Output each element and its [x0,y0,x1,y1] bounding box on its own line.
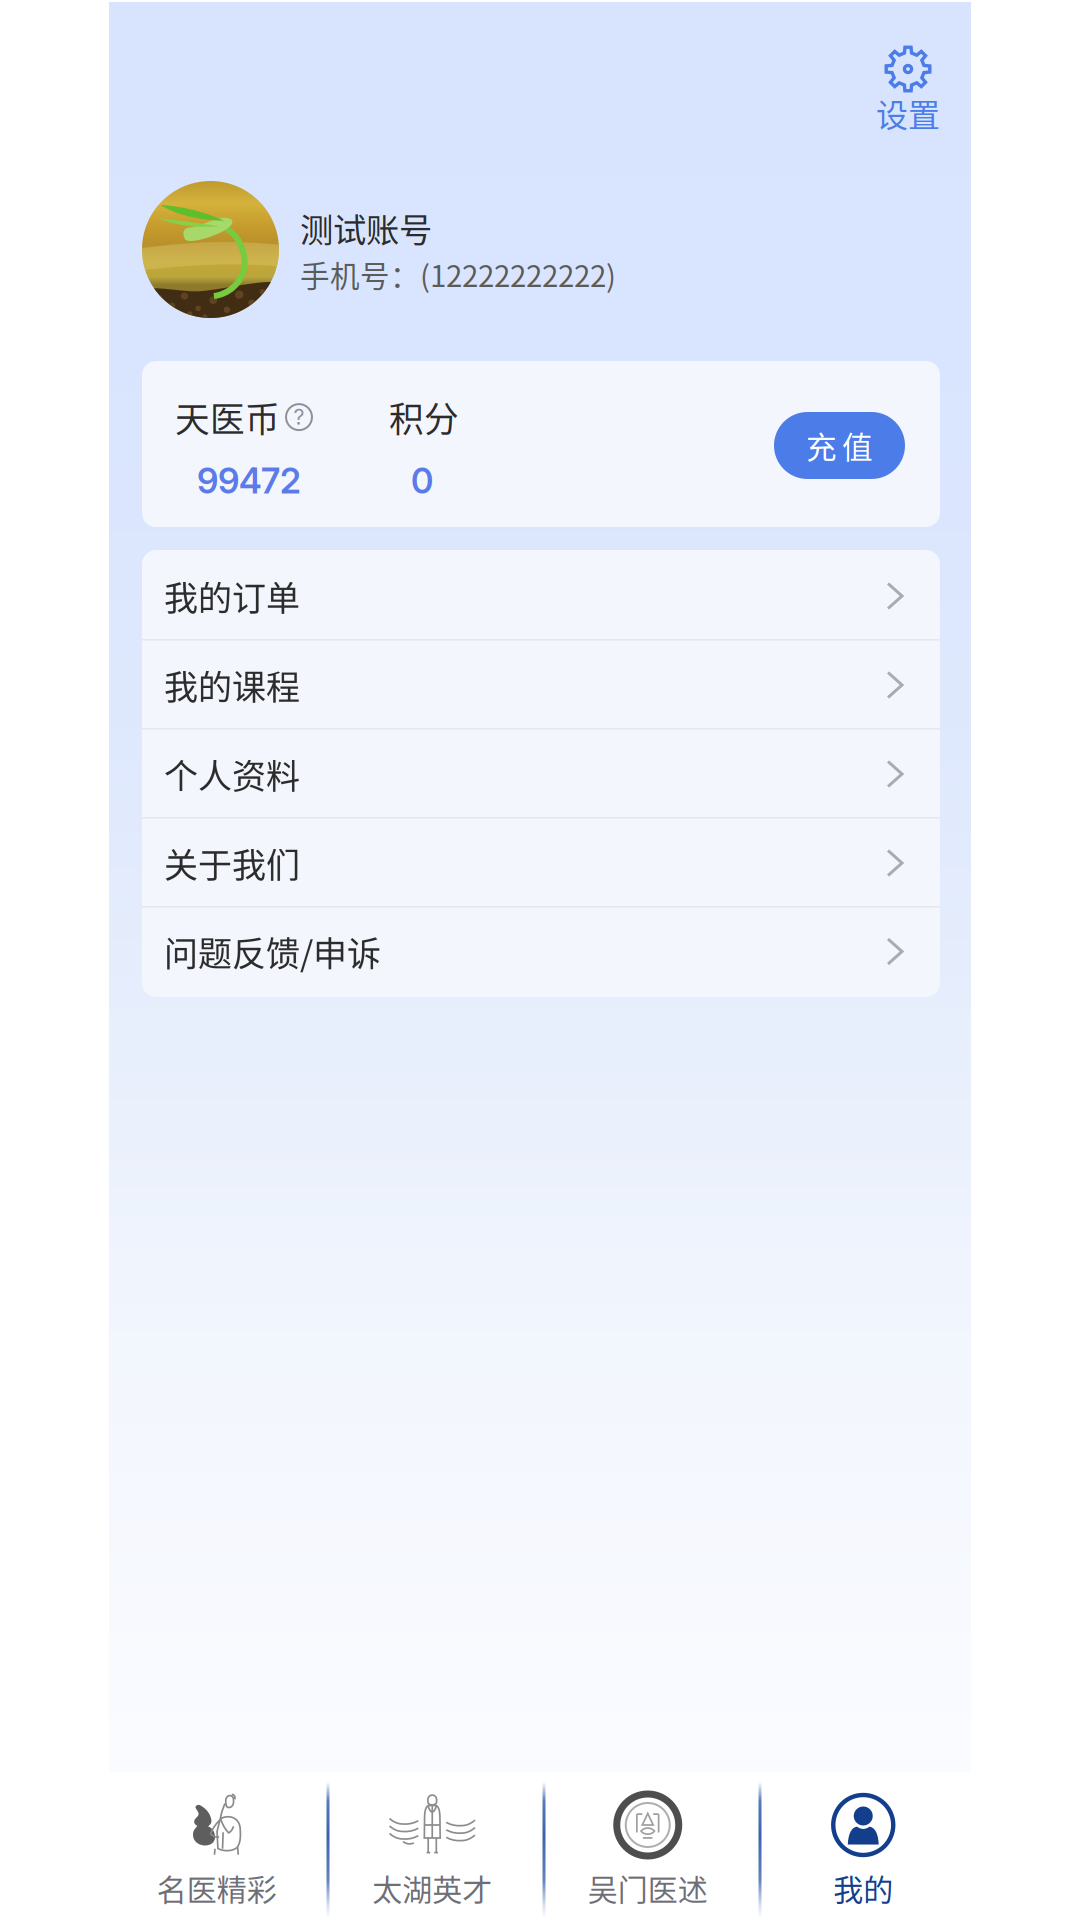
button[interactable]: 我的订单 [142,551,940,640]
staticText: ? [293,404,304,430]
staticText: 问题反馈/申诉 [164,927,381,976]
button[interactable]: 我的课程 [142,640,940,729]
button[interactable]: 测试账号 [142,181,971,318]
button[interactable]: 问题反馈/申诉 [142,907,940,995]
button[interactable]: 充值 [774,412,905,479]
staticText: 测试账号 [300,203,432,252]
staticText: 吴门医述 [588,1866,708,1909]
staticText: 99472 [197,460,301,502]
staticText: 太湖英才 [372,1866,492,1909]
staticText: 天医币 [175,392,280,442]
button[interactable]: 太湖英才 [324,1772,540,1920]
staticText: 手机号：(12222222222) [300,253,616,296]
staticText: 我的课程 [164,660,300,710]
button[interactable]: 天医币说明 [286,404,312,430]
button[interactable]: 名医精彩 [109,1772,324,1920]
button[interactable]: 设置 [848,35,968,165]
staticText: 名医精彩 [157,1866,277,1909]
staticText: 个人资料 [164,749,300,799]
staticText: 设置 [876,90,940,136]
staticText: 我的 [833,1866,893,1909]
button[interactable]: 关于我们 [142,818,940,907]
staticText: 我的订单 [164,571,300,621]
staticText: 充值 [806,423,873,468]
staticText: 0 [411,460,433,502]
button[interactable]: 我的 [755,1772,971,1920]
button[interactable]: 吴门医述 [540,1772,755,1920]
button[interactable]: 个人资料 [142,729,940,818]
staticText: 积分 [389,392,459,442]
staticText: 关于我们 [164,838,300,888]
